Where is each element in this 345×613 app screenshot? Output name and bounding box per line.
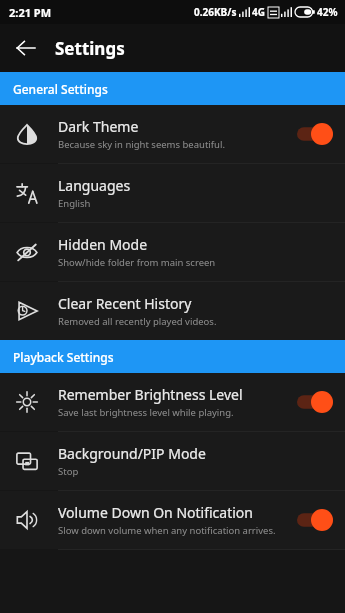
staticText: Save last brightness level while playing… xyxy=(58,406,234,419)
staticText: 42% xyxy=(317,5,338,19)
staticText: Languages xyxy=(58,176,131,195)
staticText: Playback Settings xyxy=(13,349,114,365)
staticText: Settings xyxy=(55,37,125,60)
staticText: Stop xyxy=(58,465,79,478)
staticText: Remember Brightness Level xyxy=(58,385,243,404)
button[interactable]: Toggle xyxy=(297,391,333,413)
staticText: Background/PIP Mode xyxy=(58,444,206,463)
staticText: 4G xyxy=(252,5,265,19)
staticText: Because sky in night seems beautiful. xyxy=(58,138,225,151)
button[interactable]: Languages xyxy=(0,164,345,222)
staticText: 2:21 PM xyxy=(9,5,52,20)
staticText: Slow down volume when any notification a… xyxy=(58,524,276,537)
staticText: Hidden Mode xyxy=(58,235,148,254)
button[interactable]: Toggle xyxy=(297,123,333,145)
staticText: Dark Theme xyxy=(58,117,139,136)
button[interactable]: Hidden Mode xyxy=(0,223,345,281)
button[interactable]: Dark Theme xyxy=(0,105,345,163)
staticText: Removed all recently played videos. xyxy=(58,315,217,328)
staticText: Clear Recent History xyxy=(58,294,192,313)
staticText: Volume Down On Notification xyxy=(58,503,253,522)
staticText: Show/hide folder from main screen xyxy=(58,256,216,269)
button[interactable]: Background/PIP Mode xyxy=(0,432,345,490)
staticText: English xyxy=(58,197,91,210)
button[interactable]: Remember Brightness Level xyxy=(0,373,345,431)
staticText: 0.26KB/s xyxy=(194,5,237,19)
button[interactable]: Back xyxy=(8,30,44,66)
button[interactable]: Toggle xyxy=(297,509,333,531)
button[interactable]: Clear Recent History xyxy=(0,282,345,340)
staticText: General Settings xyxy=(13,81,108,97)
button[interactable]: Volume Down On Notification xyxy=(0,491,345,549)
